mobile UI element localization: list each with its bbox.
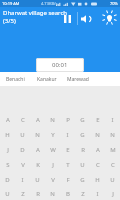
button[interactable]: Benachi — [0, 72, 31, 86]
staticText: Dharwat village search — [3, 9, 68, 17]
staticText: G — [80, 131, 85, 139]
button[interactable]: D — [15, 142, 30, 157]
button[interactable]: U — [15, 127, 30, 142]
staticText: I — [66, 131, 69, 139]
button[interactable]: R — [75, 142, 90, 157]
staticText: G — [80, 116, 85, 124]
staticText: H — [95, 176, 100, 184]
button[interactable]: I — [15, 172, 30, 187]
button[interactable]: F — [60, 172, 75, 187]
button[interactable]: S — [0, 157, 15, 172]
button[interactable]: Kanakur — [31, 72, 62, 86]
staticText: N — [50, 116, 55, 124]
button[interactable]: H — [90, 172, 105, 187]
staticText: S — [6, 161, 10, 169]
button[interactable]: A — [90, 142, 105, 157]
staticText: A — [36, 146, 40, 154]
button[interactable]: J — [105, 187, 120, 200]
button[interactable]: I — [90, 187, 105, 200]
button[interactable]: C — [15, 112, 30, 127]
staticText: I — [96, 190, 99, 198]
button[interactable]: Pause — [60, 12, 74, 26]
staticText: Y — [51, 131, 55, 139]
staticText: V — [21, 161, 25, 169]
button[interactable]: U — [0, 187, 15, 200]
staticText: R — [81, 146, 85, 154]
button[interactable]: J — [45, 157, 60, 172]
button[interactable]: Z — [75, 187, 90, 200]
button[interactable]: Hint — [102, 11, 117, 26]
staticText: U — [5, 190, 10, 198]
staticText: J — [52, 161, 54, 169]
button[interactable]: N — [90, 127, 105, 142]
button[interactable]: C — [105, 157, 120, 172]
staticText: E — [66, 146, 70, 154]
staticText: N — [95, 131, 100, 139]
staticText: 10:19 AM — [2, 1, 20, 6]
staticText: I — [111, 116, 114, 124]
staticText: U — [110, 176, 115, 184]
button[interactable]: N — [45, 112, 60, 127]
button[interactable]: I — [105, 112, 120, 127]
button[interactable]: E — [60, 142, 75, 157]
button[interactable]: A — [30, 112, 45, 127]
button[interactable]: Y — [45, 127, 60, 142]
button[interactable]: J — [0, 142, 15, 157]
staticText: U — [20, 131, 25, 139]
button[interactable]: B — [60, 187, 75, 200]
button[interactable]: N — [30, 127, 45, 142]
staticText: C — [96, 161, 100, 169]
button[interactable]: V — [45, 172, 60, 187]
staticText: I — [21, 176, 24, 184]
button[interactable]: W — [45, 142, 60, 157]
staticText: M — [110, 146, 116, 154]
staticText: 4.73KB/s — [41, 1, 58, 6]
button[interactable]: M — [105, 142, 120, 157]
button[interactable]: H — [0, 127, 15, 142]
button[interactable]: U — [105, 172, 120, 187]
button[interactable]: Volume — [79, 12, 92, 25]
button[interactable]: N — [105, 127, 120, 142]
button[interactable]: G — [75, 127, 90, 142]
button[interactable]: N — [45, 187, 60, 200]
button[interactable]: G — [75, 112, 90, 127]
staticText: B — [66, 190, 70, 198]
staticText: J — [112, 190, 114, 198]
staticText: C — [111, 161, 115, 169]
staticText: D — [5, 176, 10, 184]
staticText: 00:01 — [52, 61, 68, 69]
button[interactable]: R — [30, 187, 45, 200]
staticText: Z — [81, 190, 85, 198]
staticText: P — [66, 116, 70, 124]
button[interactable]: V — [15, 157, 30, 172]
staticText: U — [80, 161, 85, 169]
button[interactable]: G — [75, 172, 90, 187]
staticText: Kanakur — [37, 76, 57, 83]
staticText: T — [66, 161, 70, 169]
button[interactable]: U — [30, 172, 45, 187]
button[interactable]: K — [30, 157, 45, 172]
button[interactable]: U — [75, 157, 90, 172]
button[interactable]: A — [0, 112, 15, 127]
button[interactable]: C — [90, 157, 105, 172]
button[interactable]: 00:01 — [36, 58, 84, 72]
button[interactable]: P — [60, 112, 75, 127]
staticText: E — [96, 116, 100, 124]
button[interactable]: Z — [15, 187, 30, 200]
staticText: A — [96, 146, 100, 154]
button[interactable]: D — [0, 172, 15, 187]
staticText: R — [36, 190, 40, 198]
staticText: W — [50, 146, 56, 154]
staticText: A — [36, 116, 40, 124]
button[interactable]: I — [60, 127, 75, 142]
staticText: N — [50, 190, 55, 198]
button[interactable]: Marewad — [62, 72, 93, 86]
staticText: 70% — [110, 1, 118, 6]
staticText: C — [21, 116, 25, 124]
button[interactable]: A — [30, 142, 45, 157]
button[interactable]: E — [90, 112, 105, 127]
staticText: V — [51, 176, 55, 184]
button[interactable]: T — [60, 157, 75, 172]
staticText: N — [110, 131, 115, 139]
staticText: A — [6, 116, 10, 124]
